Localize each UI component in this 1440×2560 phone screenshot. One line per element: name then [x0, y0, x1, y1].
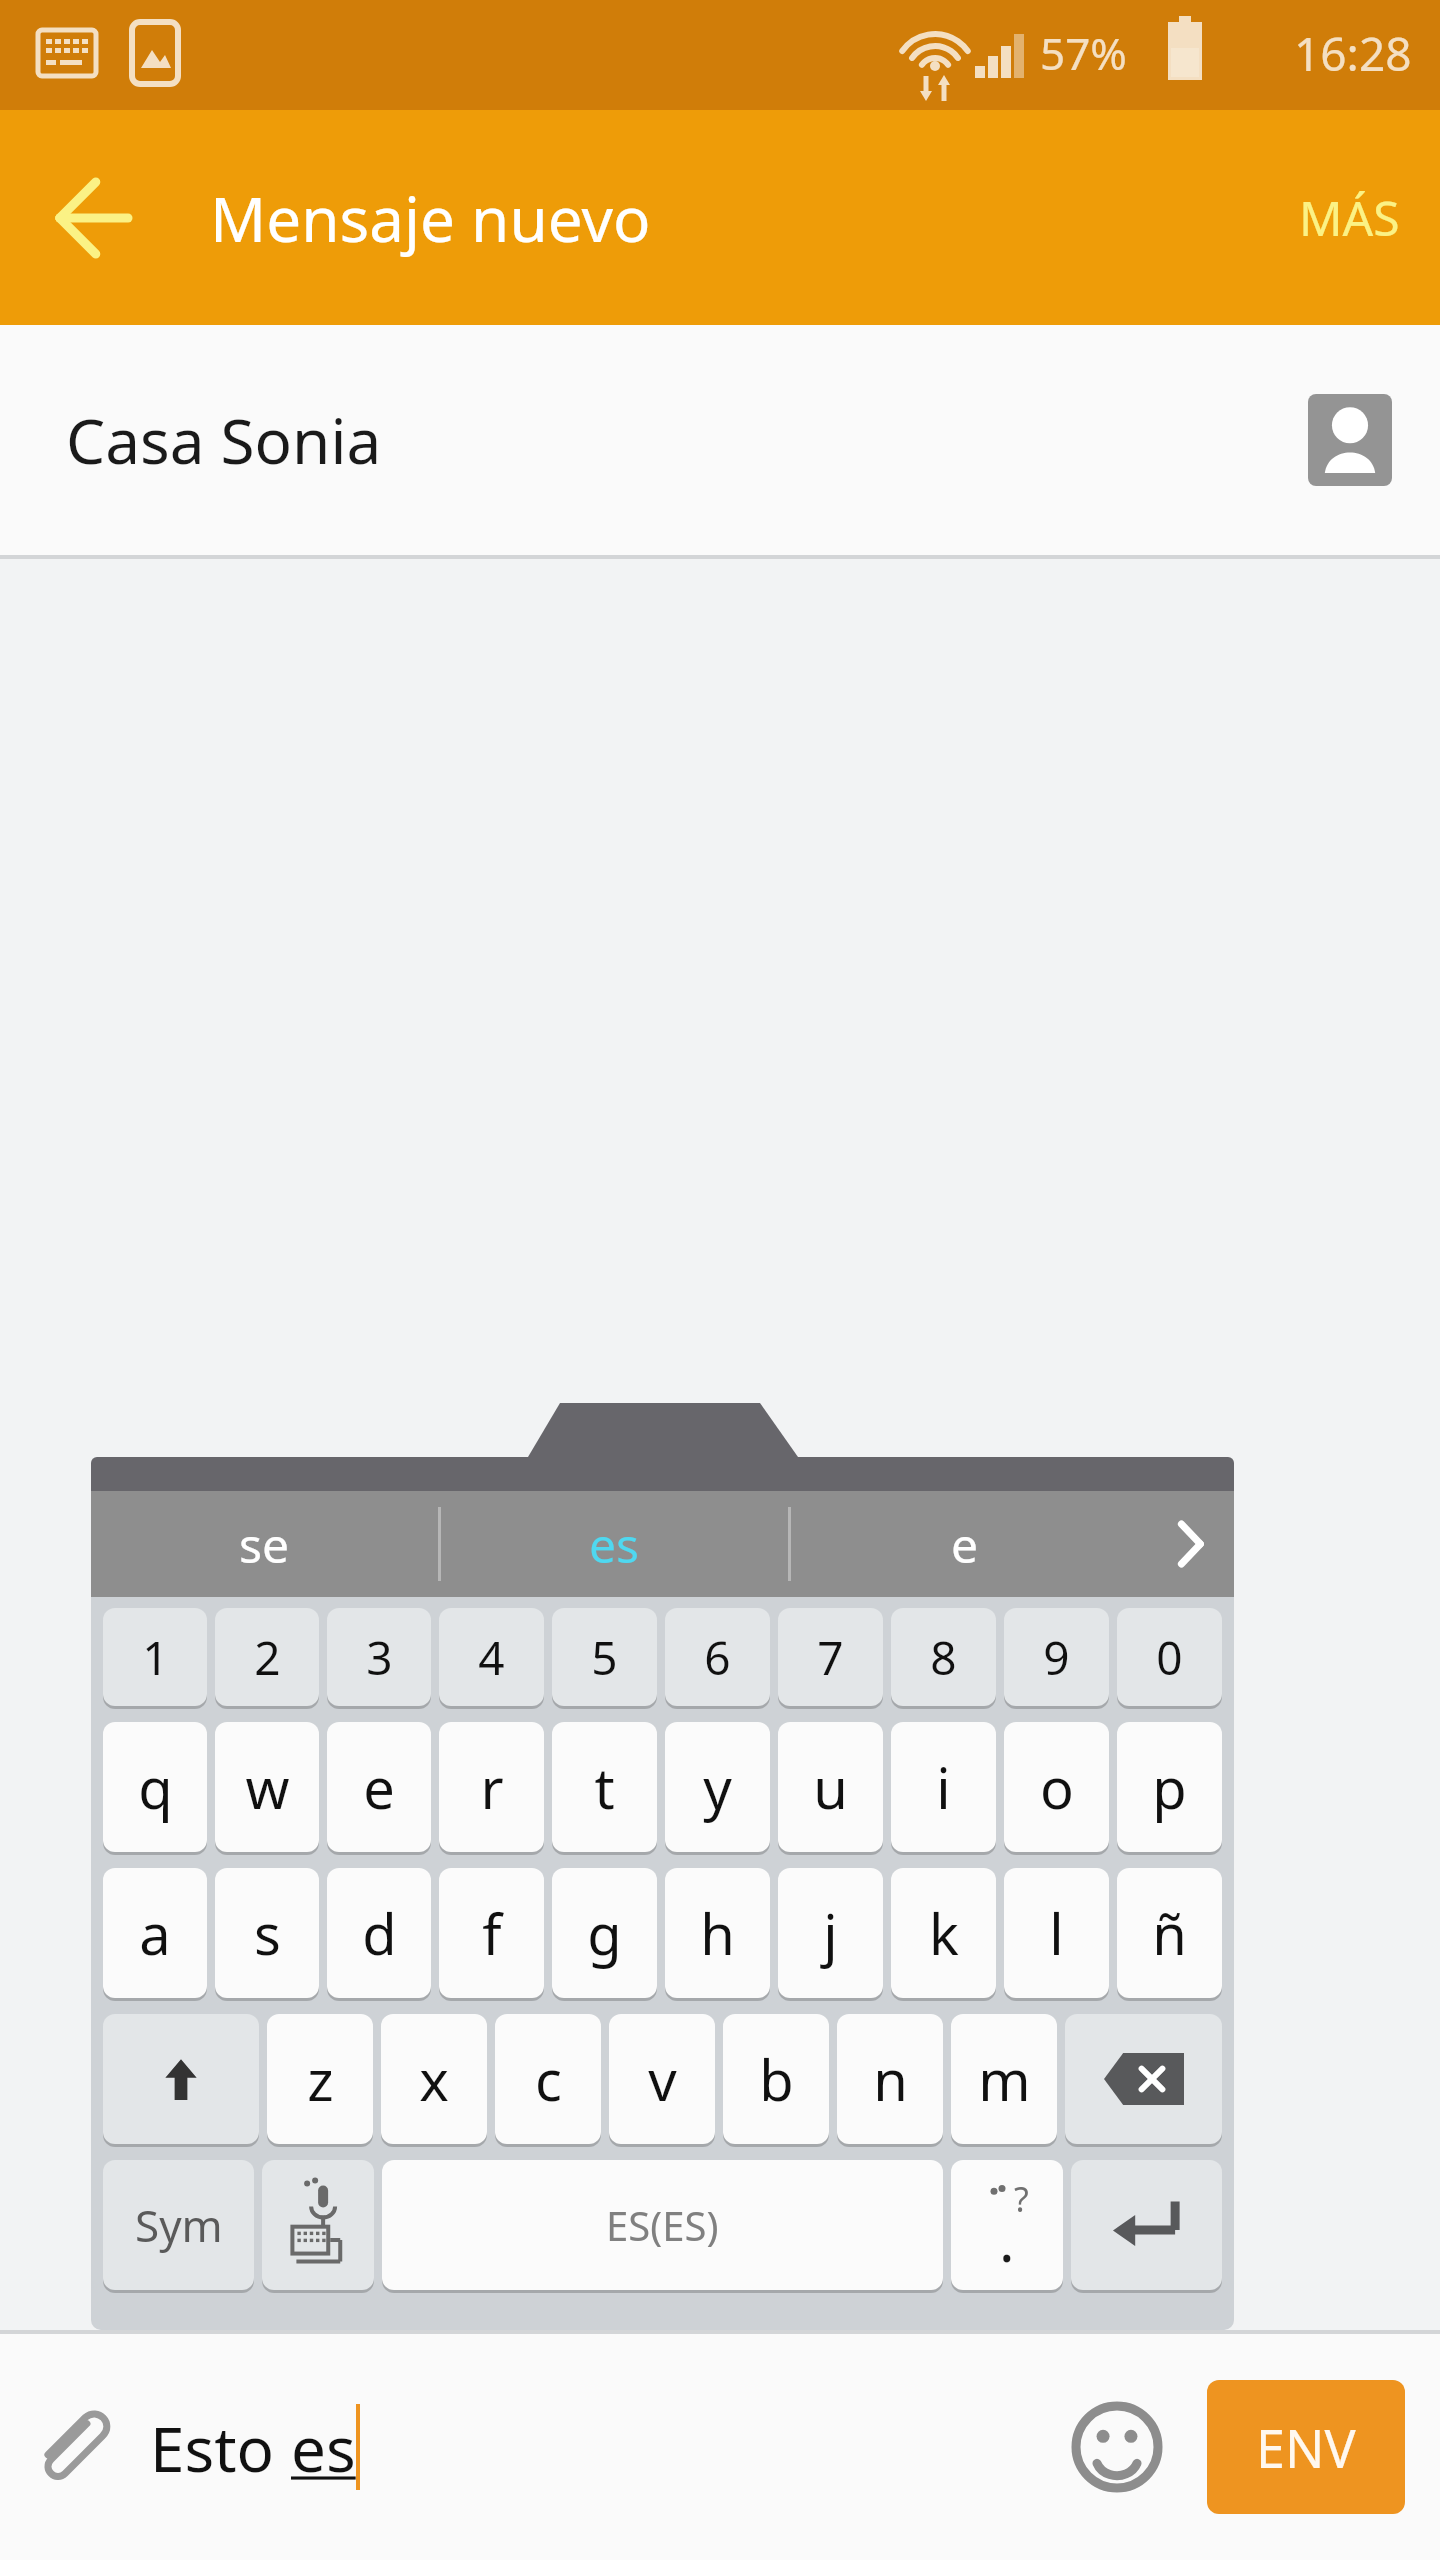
button[interactable]: 8 [891, 1608, 996, 1706]
button[interactable]: n [837, 2014, 943, 2144]
button[interactable]: t [552, 1722, 657, 1852]
button[interactable]: Sym [103, 2160, 254, 2290]
button[interactable]: e [791, 1491, 1138, 1597]
button[interactable]: 0 [1117, 1608, 1222, 1706]
staticText: l [1049, 1895, 1064, 1971]
button[interactable]: es [441, 1491, 788, 1597]
button[interactable]: e [327, 1722, 431, 1852]
button[interactable]: 6 [665, 1608, 770, 1706]
staticText: w [245, 1749, 290, 1825]
staticText: u [813, 1749, 848, 1825]
staticText: m [978, 2041, 1031, 2117]
staticText: 3 [366, 1626, 393, 1689]
button[interactable]: Attach [28, 2399, 124, 2495]
button[interactable]: 9 [1004, 1608, 1109, 1706]
staticText: Esto [150, 2406, 291, 2490]
button[interactable]: p [1117, 1722, 1222, 1852]
button[interactable]: Backspace [1065, 2014, 1222, 2144]
staticText: k [929, 1895, 959, 1971]
staticText: f [482, 1895, 502, 1971]
button[interactable]: 7 [778, 1608, 883, 1706]
button[interactable]: y [665, 1722, 770, 1852]
staticText: se [239, 1512, 290, 1577]
staticText: Mensaje nuevo [210, 176, 651, 260]
staticText: . [999, 2200, 1015, 2279]
staticText: d [362, 1895, 397, 1971]
staticText: 16:28 [1294, 22, 1412, 85]
staticText: x [419, 2041, 449, 2117]
button[interactable]: o [1004, 1722, 1109, 1852]
staticText: q [138, 1749, 173, 1825]
button[interactable]: l [1004, 1868, 1109, 1998]
button[interactable]: j [778, 1868, 883, 1998]
button[interactable]: m [951, 2014, 1057, 2144]
staticText: 57% [1040, 23, 1127, 83]
button[interactable]: MÁS [1259, 155, 1440, 280]
button[interactable]: v [609, 2014, 715, 2144]
staticText: ? [1014, 2176, 1029, 2222]
button[interactable]: Period and punctuation [951, 2160, 1063, 2290]
button[interactable]: 3 [327, 1608, 431, 1706]
button[interactable]: ñ [1117, 1868, 1222, 1998]
staticText: 4 [478, 1626, 505, 1689]
staticText: es [291, 2406, 356, 2490]
staticText: MÁS [1299, 185, 1400, 250]
staticText: o [1040, 1749, 1074, 1825]
button[interactable]: 2 [215, 1608, 319, 1706]
button[interactable]: Casa Sonia [0, 325, 1440, 555]
staticText: 8 [930, 1626, 957, 1689]
button[interactable]: w [215, 1722, 319, 1852]
button[interactable]: x [381, 2014, 487, 2144]
button[interactable]: Add recipient from contacts [1308, 394, 1392, 486]
staticText: 1 [142, 1626, 169, 1689]
button[interactable]: u [778, 1722, 883, 1852]
staticText: j [823, 1895, 838, 1971]
staticText: ENV [1256, 2412, 1356, 2483]
staticText: n [873, 2041, 908, 2117]
staticText: y [703, 1749, 732, 1825]
staticText: z [307, 2041, 334, 2117]
staticText: e [363, 1749, 395, 1825]
button[interactable]: Insert emoticon [1062, 2392, 1172, 2502]
staticText: v [648, 2041, 677, 2117]
button[interactable]: d [327, 1868, 431, 1998]
staticText: 6 [704, 1626, 731, 1689]
button[interactable]: f [439, 1868, 544, 1998]
staticText: Casa Sonia [66, 398, 382, 482]
button[interactable]: s [215, 1868, 319, 1998]
button[interactable]: i [891, 1722, 996, 1852]
staticText: t [594, 1749, 615, 1825]
button[interactable]: k [891, 1868, 996, 1998]
button[interactable]: h [665, 1868, 770, 1998]
staticText: r [480, 1749, 504, 1825]
button[interactable]: 4 [439, 1608, 544, 1706]
button[interactable]: Back [40, 163, 150, 273]
staticText: c [535, 2041, 562, 2117]
button[interactable]: c [495, 2014, 601, 2144]
button[interactable]: Voice input and keyboard options [262, 2160, 374, 2290]
staticText: b [759, 2041, 794, 2117]
staticText: 7 [817, 1626, 844, 1689]
button[interactable]: 5 [552, 1608, 657, 1706]
button[interactable]: r [439, 1722, 544, 1852]
button[interactable]: q [103, 1722, 207, 1852]
staticText: g [587, 1895, 622, 1971]
button[interactable]: Shift [103, 2014, 259, 2144]
button[interactable]: 1 [103, 1608, 207, 1706]
button[interactable]: a [103, 1868, 207, 1998]
staticText: ES(ES) [606, 2198, 719, 2252]
staticText: i [936, 1749, 951, 1825]
staticText: 9 [1043, 1626, 1070, 1689]
button[interactable]: b [723, 2014, 829, 2144]
staticText: 5 [591, 1626, 618, 1689]
button[interactable]: ENV [1207, 2380, 1405, 2514]
staticText: s [254, 1895, 281, 1971]
staticText: e [951, 1512, 979, 1577]
button[interactable]: Enter [1071, 2160, 1222, 2290]
button[interactable]: Space [382, 2160, 943, 2290]
button[interactable]: se [91, 1491, 438, 1597]
staticText: p [1152, 1749, 1187, 1825]
button[interactable]: More suggestions [1138, 1491, 1234, 1597]
button[interactable]: g [552, 1868, 657, 1998]
button[interactable]: z [267, 2014, 373, 2144]
